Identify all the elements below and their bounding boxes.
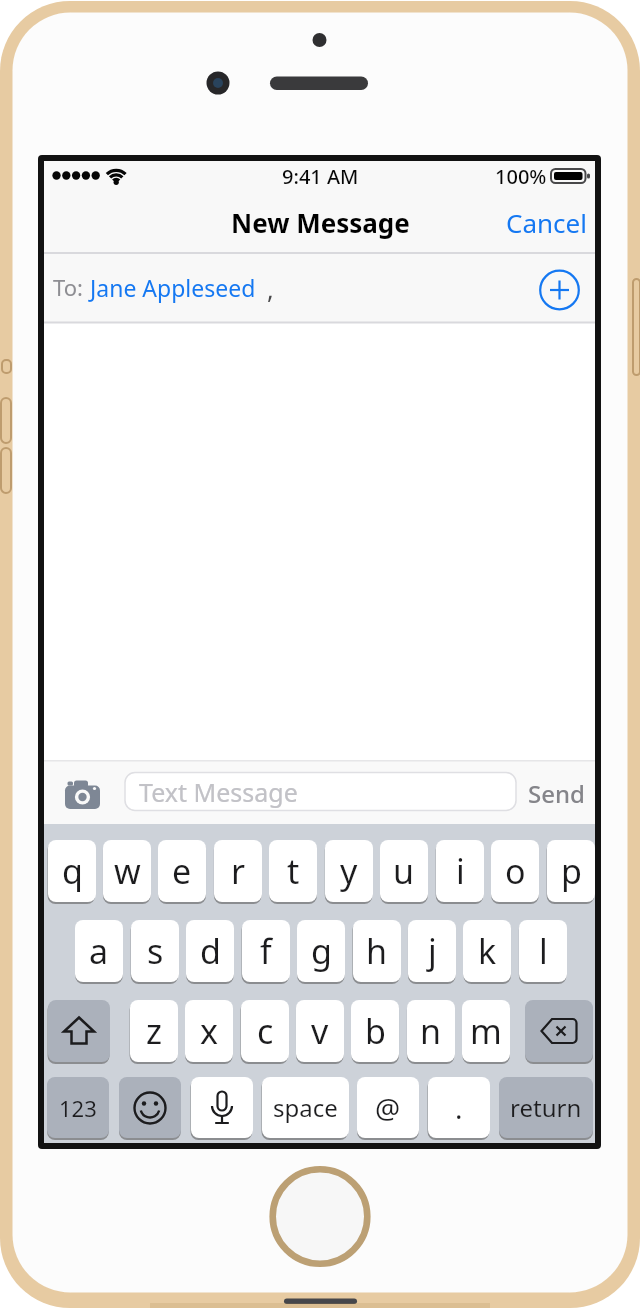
staticText: n: [420, 1008, 442, 1054]
staticText: ,: [267, 272, 274, 306]
button[interactable]: @: [357, 1077, 419, 1138]
button[interactable]: [525, 1000, 593, 1062]
button[interactable]: .: [428, 1077, 490, 1138]
button[interactable]: h: [353, 920, 401, 982]
staticText: return: [510, 1091, 582, 1124]
staticText: Cancel: [506, 205, 587, 240]
staticText: u: [393, 848, 415, 894]
staticText: 123: [59, 1093, 97, 1123]
staticText: j: [428, 928, 437, 974]
staticText: z: [146, 1008, 162, 1054]
button[interactable]: [539, 269, 581, 311]
button[interactable]: return: [499, 1077, 593, 1138]
staticText: b: [365, 1008, 386, 1054]
button[interactable]: l: [519, 920, 567, 982]
button[interactable]: v: [296, 1000, 344, 1062]
staticText: l: [539, 928, 548, 974]
button[interactable]: m: [462, 1000, 510, 1062]
staticText: Text Message: [139, 775, 298, 809]
staticText: a: [89, 928, 109, 974]
button[interactable]: [119, 1077, 181, 1138]
staticText: g: [311, 928, 332, 974]
staticText: To:: [53, 272, 83, 302]
button[interactable]: x: [185, 1000, 233, 1062]
staticText: f: [260, 928, 272, 974]
button[interactable]: [62, 776, 104, 814]
staticText: w: [114, 848, 141, 894]
staticText: p: [561, 848, 582, 894]
button[interactable]: space: [262, 1077, 349, 1138]
button[interactable]: Cancel: [420, 201, 587, 244]
button[interactable]: k: [463, 920, 511, 982]
staticText: m: [470, 1008, 502, 1054]
button[interactable]: a: [75, 920, 123, 982]
button[interactable]: o: [491, 840, 539, 902]
staticText: Send: [528, 777, 585, 810]
button[interactable]: n: [407, 1000, 455, 1062]
staticText: Jane Appleseed: [90, 272, 256, 303]
button[interactable]: s: [131, 920, 179, 982]
staticText: s: [147, 928, 164, 974]
staticText: i: [456, 848, 465, 894]
button[interactable]: Jane Appleseed: [90, 270, 290, 304]
button[interactable]: 123: [47, 1077, 109, 1138]
staticText: space: [273, 1091, 338, 1124]
staticText: 9:41 AM: [282, 163, 359, 190]
button[interactable]: r: [214, 840, 262, 902]
button[interactable]: i: [436, 840, 484, 902]
staticText: e: [172, 848, 192, 894]
staticText: t: [287, 848, 300, 894]
button[interactable]: t: [269, 840, 317, 902]
staticText: h: [366, 928, 388, 974]
staticText: .: [455, 1089, 463, 1127]
staticText: c: [257, 1008, 274, 1054]
staticText: @: [375, 1089, 401, 1127]
button[interactable]: u: [380, 840, 428, 902]
staticText: q: [62, 848, 83, 894]
staticText: d: [200, 928, 221, 974]
staticText: r: [231, 848, 246, 894]
button[interactable]: q: [48, 840, 96, 902]
staticText: x: [200, 1008, 218, 1054]
button[interactable]: g: [297, 920, 345, 982]
button[interactable]: [191, 1077, 253, 1138]
button[interactable]: f: [242, 920, 290, 982]
button[interactable]: w: [103, 840, 151, 902]
staticText: o: [505, 848, 526, 894]
button[interactable]: b: [351, 1000, 399, 1062]
staticText: k: [478, 928, 497, 974]
button[interactable]: c: [241, 1000, 289, 1062]
button[interactable]: j: [408, 920, 456, 982]
button[interactable]: Send: [522, 776, 591, 810]
staticText: v: [311, 1008, 329, 1054]
button[interactable]: d: [186, 920, 234, 982]
button[interactable]: p: [547, 840, 595, 902]
button[interactable]: e: [158, 840, 206, 902]
button[interactable]: z: [130, 1000, 178, 1062]
staticText: New Message: [231, 205, 410, 240]
button[interactable]: Text Message: [139, 775, 359, 809]
staticText: y: [340, 848, 358, 894]
staticText: 100%: [495, 163, 547, 190]
button[interactable]: y: [325, 840, 373, 902]
button[interactable]: [48, 1000, 110, 1062]
